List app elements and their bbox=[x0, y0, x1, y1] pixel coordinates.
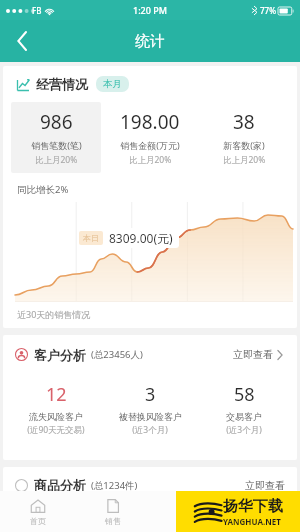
staticText: 被替换风险客户 bbox=[119, 411, 182, 422]
staticText: 同比增长2% bbox=[17, 183, 69, 196]
staticText: 198.00 bbox=[120, 109, 180, 135]
staticText: 销售 bbox=[105, 516, 121, 526]
staticText: 营销 bbox=[180, 516, 196, 526]
staticText: 8309.00(元) bbox=[109, 230, 173, 246]
button[interactable]: 经营情况 bbox=[3, 66, 297, 328]
staticText: 3 bbox=[145, 382, 156, 407]
button[interactable]: 58 bbox=[197, 380, 291, 438]
staticText: 立即查看 bbox=[233, 348, 273, 361]
staticText: 销售金额(万元) bbox=[120, 139, 180, 151]
button[interactable]: 3 bbox=[103, 380, 197, 438]
button[interactable]: 首页 bbox=[0, 491, 75, 532]
button[interactable]: 销售 bbox=[75, 491, 150, 532]
staticText: 立即查看 bbox=[245, 479, 285, 492]
staticText: (总23456人) bbox=[91, 348, 143, 361]
button[interactable]: 38 bbox=[199, 102, 289, 173]
button[interactable]: 商品分析 bbox=[3, 467, 297, 513]
staticText: 比上月20% bbox=[223, 154, 266, 166]
button[interactable]: 本月 bbox=[96, 76, 129, 92]
button[interactable]: 986 bbox=[11, 102, 101, 173]
staticText: 本月 bbox=[103, 78, 122, 90]
staticText: 统计 bbox=[135, 32, 165, 51]
staticText: (近3个月) bbox=[132, 424, 168, 436]
staticText: 扬华下载 bbox=[223, 497, 283, 516]
staticText: 流失风险客户 bbox=[29, 411, 83, 422]
button[interactable]: 198.00 bbox=[105, 102, 195, 173]
staticText: 商品分析 bbox=[34, 477, 86, 493]
button[interactable]: Back bbox=[0, 20, 44, 62]
button[interactable]: 营销 bbox=[150, 491, 225, 532]
staticText: 比上月20% bbox=[35, 154, 78, 166]
button[interactable]: 客户分析 bbox=[3, 335, 297, 460]
staticText: 客户分析 bbox=[34, 347, 86, 363]
staticText: 近30天的销售情况 bbox=[17, 308, 91, 320]
staticText: 986 bbox=[40, 109, 73, 135]
staticText: 首页 bbox=[30, 516, 46, 526]
staticText: 12 bbox=[46, 382, 67, 407]
staticText: 销售笔数(笔) bbox=[31, 139, 82, 151]
button[interactable]: 立即查看 bbox=[231, 345, 285, 364]
staticText: 比上月20% bbox=[129, 154, 172, 166]
staticText: (总1234件) bbox=[91, 479, 138, 492]
staticText: 38 bbox=[233, 109, 255, 135]
staticText: 1:20 PM bbox=[133, 4, 167, 16]
staticText: 77% bbox=[260, 5, 276, 16]
staticText: (近3个月) bbox=[226, 424, 262, 436]
button[interactable]: 12 bbox=[9, 380, 103, 438]
staticText: (近90天无交易) bbox=[27, 424, 85, 436]
staticText: 经营情况 bbox=[36, 76, 88, 92]
staticText: YANGHUA.NET bbox=[223, 516, 281, 527]
staticText: 新客数(家) bbox=[223, 139, 265, 151]
staticText: 58 bbox=[234, 382, 255, 407]
staticText: 交易客户 bbox=[226, 411, 262, 422]
staticText: FB bbox=[32, 5, 42, 16]
staticText: 本日 bbox=[83, 233, 99, 243]
